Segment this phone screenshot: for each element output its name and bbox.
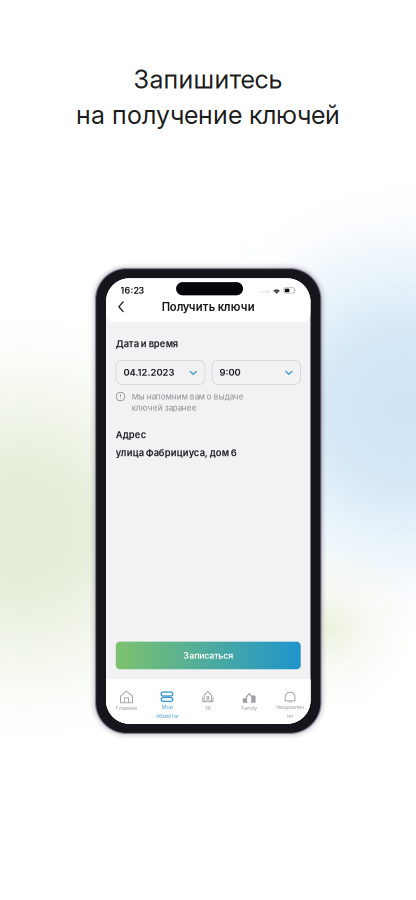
staticText: Запишитесь bbox=[133, 64, 282, 94]
staticText: ия bbox=[287, 713, 293, 719]
staticText: Family bbox=[241, 705, 257, 711]
button[interactable]: Back bbox=[113, 297, 130, 317]
staticText: Мои bbox=[162, 704, 173, 710]
staticText: Главная bbox=[116, 705, 137, 711]
button[interactable]: Family bbox=[229, 679, 270, 724]
staticText: Уведомлен bbox=[276, 704, 304, 710]
button[interactable]: 9:00 bbox=[212, 360, 301, 384]
staticText: Мы напомним вам о выдаче bbox=[132, 392, 244, 402]
staticText: 9:00 bbox=[220, 367, 241, 378]
staticText: Дата и время bbox=[116, 338, 178, 349]
staticText: Записаться bbox=[183, 650, 233, 661]
staticText: объекты bbox=[156, 713, 178, 719]
staticText: ключей заранее bbox=[132, 403, 197, 413]
button[interactable]: Уведомлен bbox=[270, 679, 310, 724]
button[interactable]: Мои bbox=[147, 679, 188, 724]
staticText: улица Фабрициуса, дом 6 bbox=[116, 447, 237, 458]
staticText: 16:23 bbox=[120, 285, 144, 296]
staticText: на получение ключей bbox=[76, 99, 340, 130]
staticText: Получить ключи bbox=[162, 300, 255, 314]
button[interactable]: 04.12.2023 bbox=[116, 360, 205, 384]
staticText: УК bbox=[205, 705, 212, 711]
staticText: 04.12.2023 bbox=[123, 367, 174, 378]
button[interactable]: УК bbox=[188, 679, 229, 724]
button[interactable]: Записаться bbox=[116, 642, 301, 669]
button[interactable]: Главная bbox=[106, 679, 147, 724]
staticText: Адрес bbox=[116, 429, 146, 440]
